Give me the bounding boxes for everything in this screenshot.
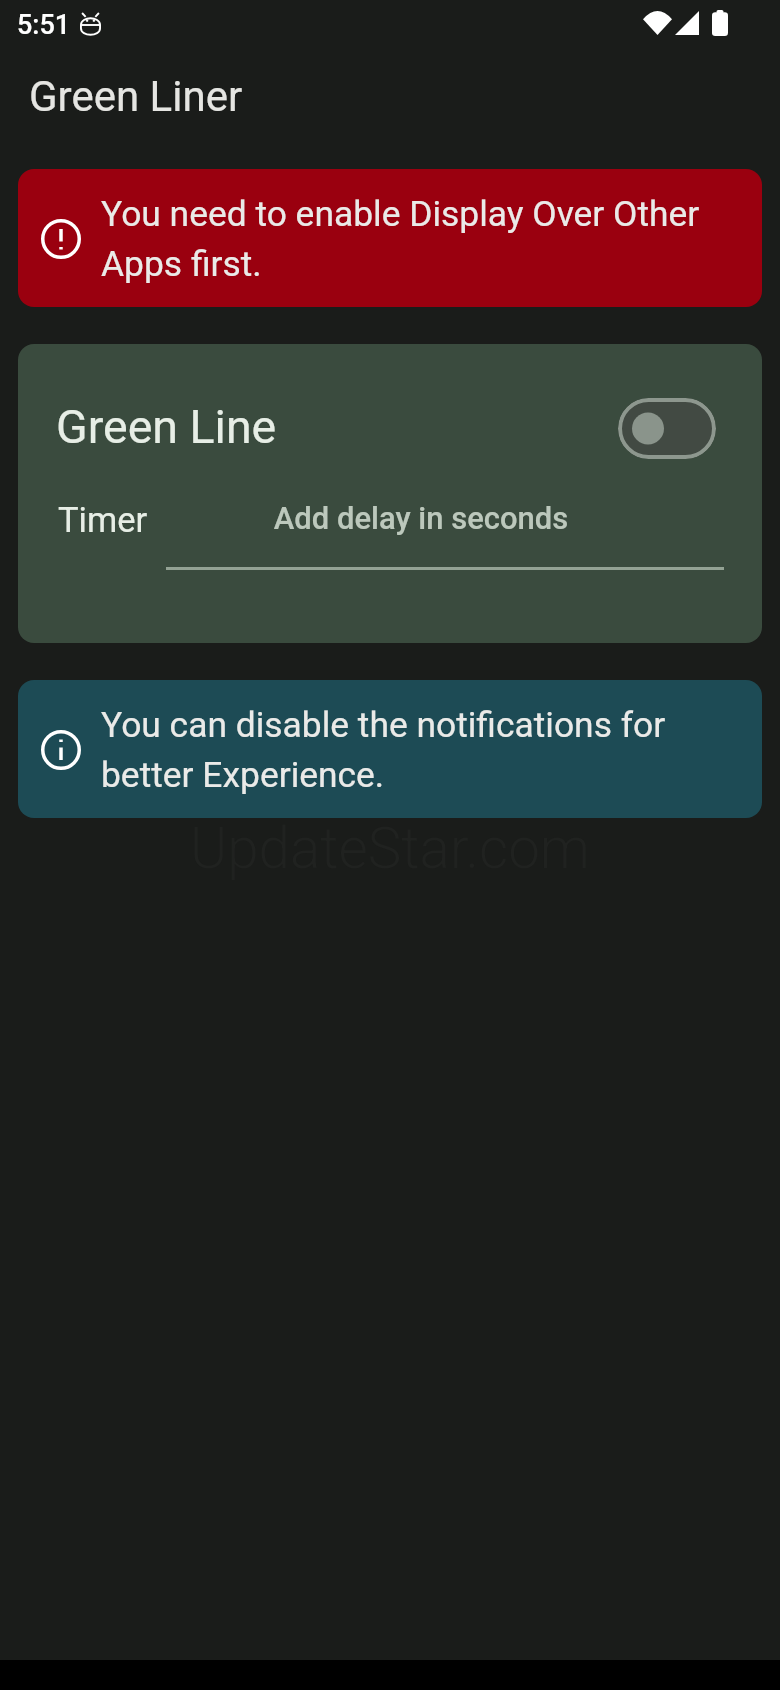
staticText: You need to enable Display Over Other Ap… [101,193,742,284]
staticText: Timer [58,500,148,540]
button[interactable]: Toggle Green Line [618,398,716,459]
staticText: Green Line [56,400,277,454]
staticText: 5:51 [17,9,71,41]
button[interactable]: Add delay in seconds [166,500,724,570]
staticText: You can disable the notifications for be… [101,704,742,795]
button[interactable]: You can disable the notifications for be… [18,680,762,818]
button[interactable]: You need to enable Display Over Other Ap… [18,169,762,307]
staticText: Add delay in seconds [166,500,676,536]
staticText: Green Liner [29,72,243,121]
staticText: UpdateStar.com [190,815,591,881]
